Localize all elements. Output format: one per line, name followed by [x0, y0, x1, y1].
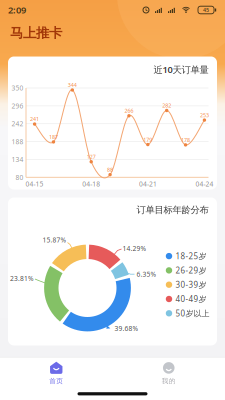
- staticText: 88: [107, 166, 113, 173]
- staticText: 266: [124, 107, 133, 114]
- staticText: 18-25岁: [175, 251, 206, 261]
- staticText: 127: [87, 153, 96, 160]
- staticText: 45: [203, 6, 209, 14]
- staticText: 178: [181, 136, 190, 143]
- staticText: 242: [11, 119, 23, 128]
- staticText: 344: [68, 81, 77, 88]
- staticText: 2:09: [8, 4, 26, 16]
- button[interactable]: 我的: [141, 360, 197, 386]
- staticText: 80: [15, 173, 23, 182]
- staticText: 04-18: [82, 179, 100, 188]
- staticText: 订单目标年龄分布: [136, 204, 208, 216]
- staticText: 50岁以上: [175, 308, 209, 319]
- staticText: 04-24: [195, 179, 213, 188]
- staticText: 04-21: [139, 179, 157, 188]
- staticText: 282: [162, 102, 171, 109]
- staticText: 253: [200, 111, 209, 119]
- staticText: 188: [11, 137, 23, 146]
- staticText: 14.29%: [122, 244, 146, 253]
- staticText: 15.87%: [42, 235, 66, 244]
- staticText: 马上推卡: [10, 25, 62, 41]
- staticText: 187: [49, 133, 58, 140]
- staticText: 04-15: [26, 179, 44, 188]
- staticText: 6.35%: [136, 270, 156, 279]
- staticText: 30-39岁: [175, 279, 206, 290]
- button[interactable]: 首页: [28, 360, 84, 386]
- staticText: 179: [143, 136, 152, 143]
- staticText: 350: [11, 84, 23, 92]
- staticText: 39.68%: [114, 324, 138, 333]
- staticText: 我的: [162, 377, 176, 385]
- staticText: 296: [11, 101, 23, 110]
- staticText: 134: [11, 155, 23, 164]
- staticText: 首页: [49, 377, 63, 385]
- staticText: 26-29岁: [175, 265, 206, 276]
- staticText: 241: [30, 115, 39, 123]
- staticText: 23.81%: [10, 274, 34, 283]
- staticText: 40-49岁: [175, 294, 206, 304]
- staticText: 近10天订单量: [153, 63, 208, 76]
